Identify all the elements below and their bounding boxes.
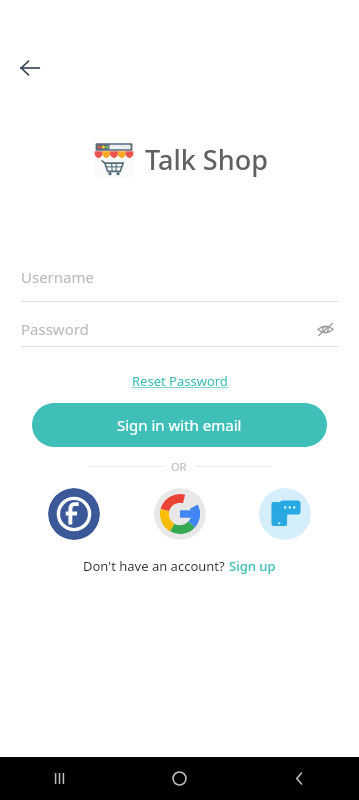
staticText: Don't have an account? [83,557,229,575]
button[interactable]: Back [10,48,50,88]
button[interactable]: Sign in with Google [154,488,206,540]
button[interactable]: Home [119,757,239,800]
button[interactable]: Show password [312,316,338,342]
staticText: Password [21,319,312,339]
button[interactable]: Reset Password [128,368,232,394]
staticText: OR [171,459,187,474]
button[interactable]: Sign in with SMS [259,488,311,540]
button[interactable]: Username [21,267,338,302]
button[interactable]: Recents [0,757,119,800]
staticText: Sign up [229,557,276,575]
staticText: Sign in with email [117,415,242,435]
button[interactable]: Back [239,757,359,800]
button[interactable]: Don't have an account? [83,557,276,575]
button[interactable]: Sign in with Facebook [48,488,100,540]
button[interactable]: Sign in with email [32,403,327,447]
staticText: Talk Shop [145,141,268,178]
staticText: Username [21,267,94,287]
